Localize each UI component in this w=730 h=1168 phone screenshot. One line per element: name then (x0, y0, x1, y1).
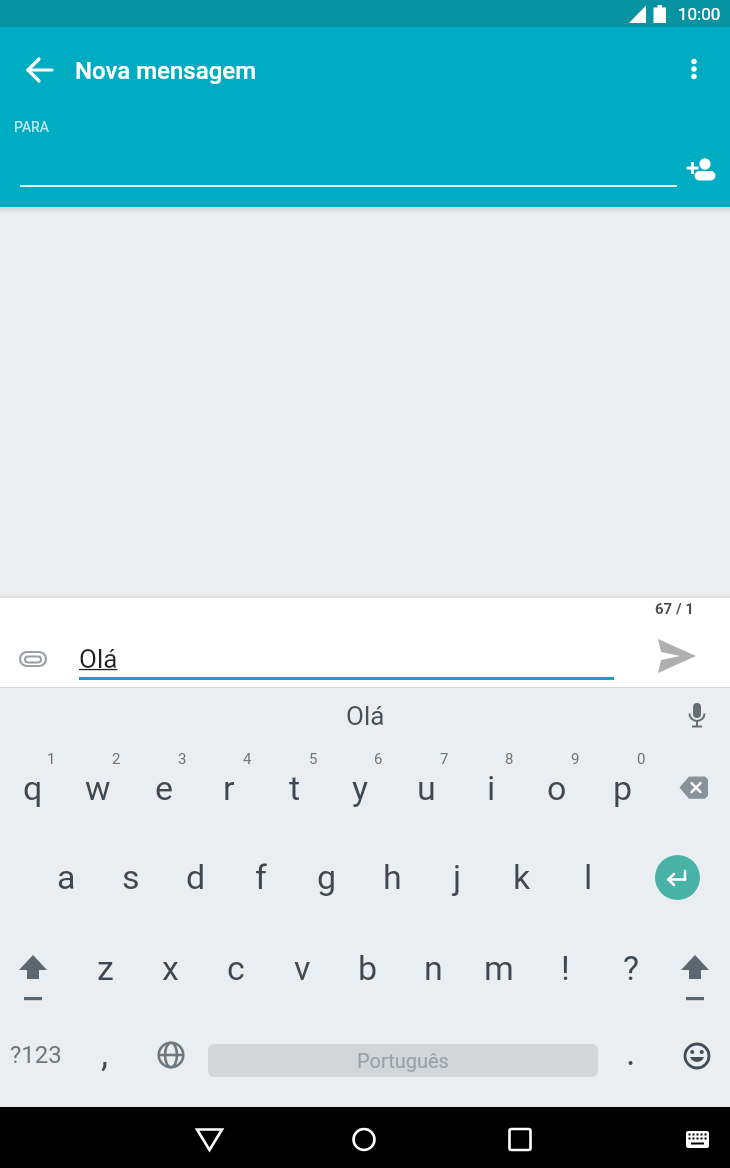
button[interactable]: g (297, 845, 357, 909)
button[interactable]: ? (601, 936, 661, 1000)
staticText: 10:00 (678, 4, 721, 24)
button[interactable]: . (611, 1023, 651, 1083)
staticText: s (122, 857, 140, 897)
staticText: t (289, 768, 301, 808)
button[interactable]: 6 (369, 749, 387, 769)
button[interactable] (14, 643, 52, 675)
staticText: h (383, 857, 402, 897)
staticText: PARA (14, 119, 49, 135)
button[interactable] (342, 1117, 386, 1161)
staticText: . (626, 1032, 636, 1074)
staticText: l (584, 857, 593, 897)
staticText: d (186, 857, 206, 897)
staticText: ! (561, 948, 570, 988)
button[interactable] (187, 1117, 231, 1161)
staticText: q (23, 768, 43, 808)
staticText: f (255, 857, 267, 897)
button[interactable]: a (36, 845, 96, 909)
staticText: u (417, 768, 436, 808)
button[interactable]: w (68, 756, 128, 820)
staticText: g (317, 857, 337, 897)
button[interactable]: f (231, 845, 291, 909)
button[interactable]: i (461, 756, 521, 820)
button[interactable] (498, 1117, 542, 1161)
button[interactable]: m (469, 936, 529, 1000)
staticText: Nova mensagem (75, 57, 257, 85)
button[interactable]: ! (535, 936, 595, 1000)
staticText: 9 (571, 750, 580, 768)
staticText: 2 (112, 750, 121, 768)
staticText: 1 (47, 750, 56, 768)
button[interactable] (676, 51, 712, 89)
button[interactable]: 5 (304, 749, 322, 769)
button[interactable]: 8 (500, 749, 518, 769)
button[interactable]: r (199, 756, 259, 820)
button[interactable]: 0 (632, 749, 650, 769)
staticText: ? (623, 948, 640, 988)
button[interactable]: z (75, 936, 135, 1000)
button[interactable] (675, 1034, 719, 1078)
button[interactable]: , (85, 1024, 125, 1084)
button[interactable]: c (206, 936, 266, 1000)
staticText: 8 (505, 750, 514, 768)
staticText: Português (357, 1049, 449, 1072)
button[interactable] (655, 855, 700, 900)
button[interactable]: p (593, 756, 653, 820)
staticText: a (57, 857, 76, 897)
button[interactable]: x (140, 936, 200, 1000)
button[interactable]: 1 (42, 749, 60, 769)
staticText: Olá (346, 701, 385, 731)
staticText: y (352, 768, 369, 808)
button[interactable]: ?123 (0, 1025, 76, 1085)
button[interactable]: Português (208, 1044, 598, 1077)
button[interactable]: b (338, 936, 398, 1000)
button[interactable]: Olá (240, 692, 490, 740)
button[interactable] (11, 944, 55, 1006)
staticText: n (424, 948, 443, 988)
staticText: j (453, 857, 462, 897)
staticText: k (513, 857, 531, 897)
button[interactable]: 3 (173, 749, 191, 769)
button[interactable]: 4 (238, 749, 256, 769)
button[interactable]: h (362, 845, 422, 909)
button[interactable]: l (558, 845, 618, 909)
button[interactable]: d (166, 845, 226, 909)
staticText: o (547, 768, 567, 808)
staticText: v (294, 948, 311, 988)
button[interactable]: o (527, 756, 587, 820)
staticText: 0 (637, 750, 646, 768)
button[interactable] (673, 944, 717, 1006)
button[interactable] (22, 52, 58, 88)
button[interactable]: v (272, 936, 332, 1000)
button[interactable]: k (492, 845, 552, 909)
button[interactable] (681, 700, 713, 734)
button[interactable]: s (101, 845, 161, 909)
staticText: p (613, 768, 633, 808)
staticText: c (227, 948, 245, 988)
staticText: z (97, 948, 114, 988)
button[interactable]: j (427, 845, 487, 909)
button[interactable]: 9 (566, 749, 584, 769)
button[interactable]: 7 (435, 749, 453, 769)
button[interactable]: 10:00 (669, 1, 729, 27)
button[interactable]: y (330, 756, 390, 820)
button[interactable] (675, 1118, 719, 1160)
button[interactable]: t (265, 756, 325, 820)
button[interactable]: e (134, 756, 194, 820)
staticText: i (487, 768, 496, 808)
button[interactable] (149, 1034, 193, 1078)
button[interactable] (662, 768, 718, 808)
button[interactable] (681, 151, 721, 187)
staticText: w (85, 768, 111, 808)
button[interactable]: Olá (79, 643, 614, 675)
button[interactable]: n (403, 936, 463, 1000)
staticText: , (101, 1033, 109, 1075)
staticText: r (223, 768, 235, 808)
button[interactable] (650, 632, 702, 680)
staticText: m (484, 948, 514, 988)
staticText: b (358, 948, 378, 988)
staticText: 7 (440, 750, 449, 768)
button[interactable]: q (3, 756, 63, 820)
button[interactable]: 2 (107, 749, 125, 769)
button[interactable]: u (396, 756, 456, 820)
